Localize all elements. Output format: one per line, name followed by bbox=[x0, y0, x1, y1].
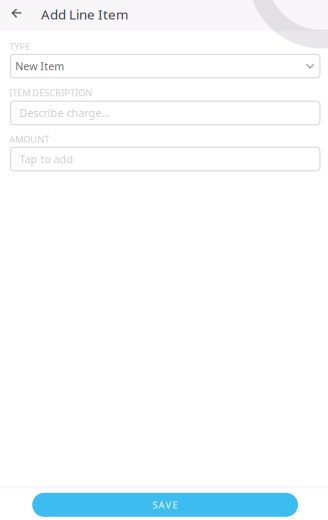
staticText: TYPE bbox=[9, 40, 30, 52]
staticText: SAVE bbox=[153, 499, 178, 511]
button[interactable]: Tap to add bbox=[10, 147, 320, 171]
button[interactable]: New Item bbox=[10, 54, 320, 78]
staticText: Add Line Item bbox=[41, 5, 128, 23]
staticText: AMOUNT bbox=[9, 133, 49, 145]
staticText: Describe charge... bbox=[19, 106, 110, 120]
button[interactable]: Describe charge... bbox=[10, 101, 320, 125]
staticText: ITEM DESCRIPTION bbox=[9, 86, 92, 99]
staticText: New Item bbox=[15, 59, 64, 73]
button[interactable]: Back bbox=[0, 0, 32, 31]
staticText: Tap to add bbox=[19, 152, 73, 166]
button[interactable]: SAVE bbox=[32, 493, 298, 517]
